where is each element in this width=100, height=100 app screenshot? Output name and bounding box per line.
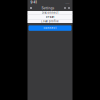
staticText: 9:41 [30, 1, 36, 4]
staticText: Restart [45, 15, 54, 19]
button[interactable]: Connect [28, 25, 71, 31]
staticText: Settings [41, 6, 54, 10]
button[interactable]: Menu [27, 7, 32, 9]
button[interactable]: Disconnect [27, 11, 72, 15]
staticText: Connect [43, 26, 56, 30]
button[interactable]: More [66, 7, 72, 9]
button[interactable]: Restart [27, 15, 72, 19]
staticText: Disconnect [41, 11, 58, 14]
button[interactable]: Load profile [27, 19, 72, 23]
staticText: Load profile [41, 20, 59, 23]
staticText: .... [65, 1, 69, 4]
